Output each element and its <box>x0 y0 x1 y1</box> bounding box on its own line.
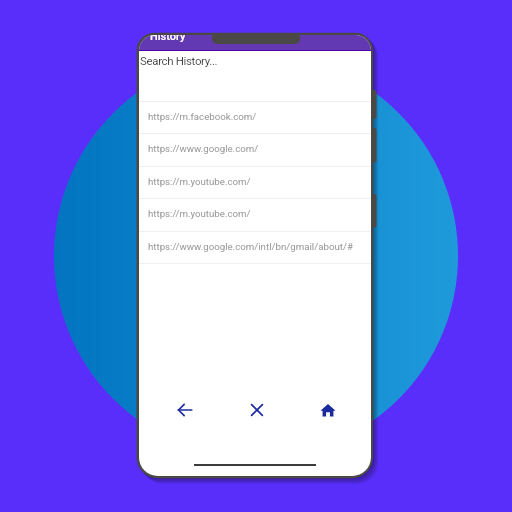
staticText: https://m.facebook.com/ <box>148 111 257 122</box>
button[interactable]: History <box>139 35 371 50</box>
staticText: Search History... <box>140 54 218 67</box>
button[interactable]: https://m.youtube.com/ <box>139 166 371 198</box>
button[interactable]: Close <box>240 393 274 427</box>
staticText: https://www.google.com/intl/bn/gmail/abo… <box>148 241 353 252</box>
button[interactable]: https://m.facebook.com/ <box>139 101 371 133</box>
staticText: History <box>150 35 186 43</box>
button[interactable]: https://www.google.com/ <box>139 133 371 165</box>
staticText: https://m.youtube.com/ <box>148 208 251 219</box>
button[interactable]: https://m.youtube.com/ <box>139 198 371 230</box>
button[interactable]: Home <box>311 393 345 427</box>
staticText: https://www.google.com/ <box>148 143 259 154</box>
button[interactable]: Back <box>168 393 202 427</box>
staticText: https://m.youtube.com/ <box>148 176 251 187</box>
button[interactable]: https://www.google.com/intl/bn/gmail/abo… <box>139 231 371 263</box>
